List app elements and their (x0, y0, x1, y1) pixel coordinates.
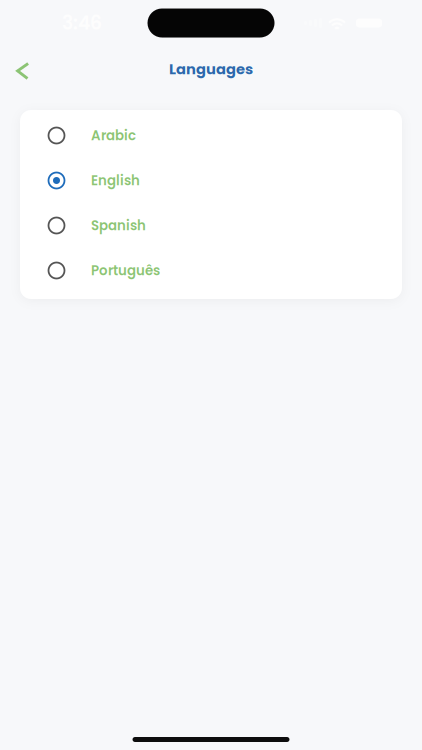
staticText: Português (91, 261, 160, 280)
button[interactable]: Spanish (20, 203, 402, 248)
button[interactable]: Português (20, 248, 402, 293)
staticText: Languages (169, 59, 253, 79)
button[interactable]: English (20, 158, 402, 203)
button[interactable]: Back (0, 48, 42, 90)
staticText: English (91, 171, 140, 190)
staticText: Arabic (91, 126, 136, 145)
button[interactable]: Arabic (20, 113, 402, 158)
staticText: Spanish (91, 216, 146, 235)
